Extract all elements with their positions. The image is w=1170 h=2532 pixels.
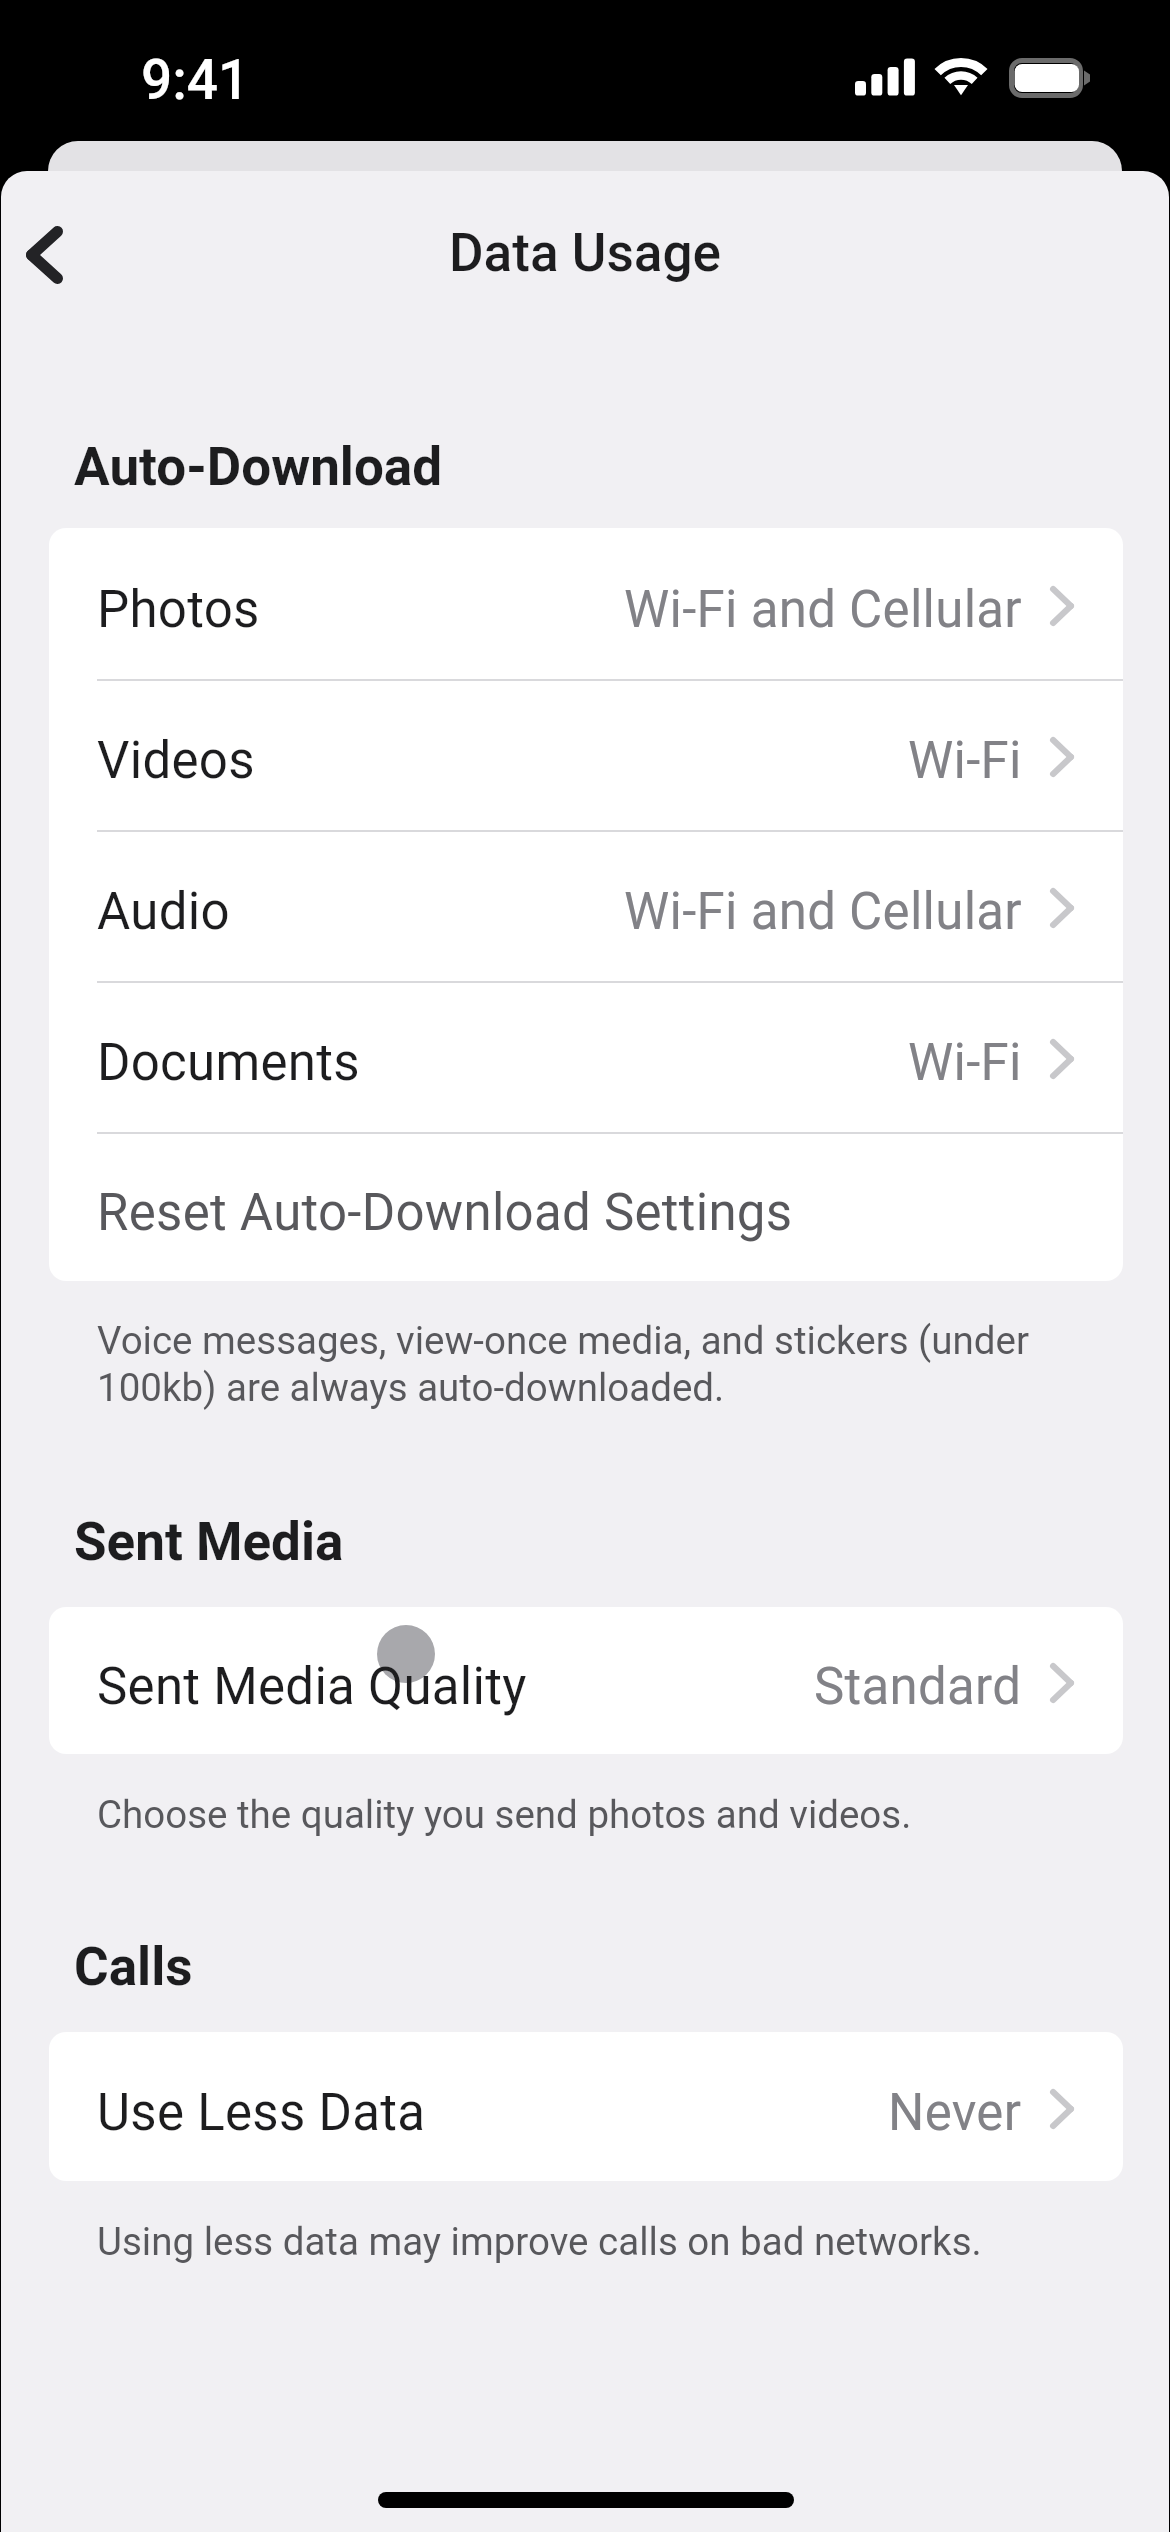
staticText: Using less data may improve calls on bad…	[97, 2219, 1041, 2264]
staticText: Never	[888, 2083, 1022, 2143]
button[interactable]: Reset Auto-Download Settings	[49, 1132, 1123, 1281]
button[interactable]: Documents	[49, 981, 1123, 1132]
button[interactable]: Videos	[49, 679, 1123, 830]
button[interactable]: Photos	[49, 528, 1123, 679]
staticText: Use Less Data	[97, 2083, 426, 2143]
staticText: 9:41	[141, 48, 250, 112]
staticText: Sent Media	[74, 1511, 344, 1573]
staticText: Wi-Fi	[908, 1033, 1022, 1093]
staticText: Wi-Fi	[908, 731, 1022, 791]
button[interactable]: Audio	[49, 830, 1123, 981]
button[interactable]: Back	[1, 200, 102, 310]
staticText: Documents	[97, 1033, 360, 1093]
staticText: Data Usage	[1, 222, 1169, 284]
staticText: Wi-Fi and Cellular	[624, 882, 1022, 942]
staticText: Auto-Download	[74, 436, 443, 498]
button[interactable]: Use Less Data	[49, 2032, 1123, 2181]
staticText: Videos	[97, 731, 255, 791]
staticText: Reset Auto-Download Settings	[97, 1183, 793, 1243]
staticText: Choose the quality you send photos and v…	[97, 1792, 1041, 1837]
button[interactable]: Sent Media Quality	[49, 1607, 1123, 1754]
staticText: Sent Media Quality	[97, 1657, 527, 1717]
staticText: Wi-Fi and Cellular	[624, 580, 1022, 640]
staticText: Calls	[74, 1936, 193, 1998]
staticText: Voice messages, view-once media, and sti…	[97, 1318, 1041, 1411]
staticText: Photos	[97, 580, 260, 640]
staticText: Standard	[814, 1657, 1022, 1717]
staticText: Audio	[97, 882, 230, 942]
